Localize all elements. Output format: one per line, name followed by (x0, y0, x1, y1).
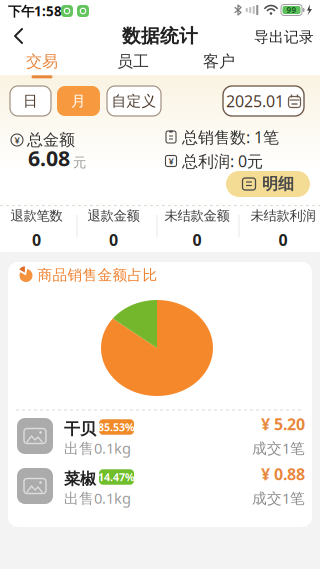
button[interactable]: 导出记录 (254, 20, 314, 54)
staticText: 商品销售金额占比 (37, 266, 157, 284)
button[interactable]: 客户 (203, 52, 235, 78)
staticText: 0 (278, 229, 287, 250)
staticText: 自定义 (111, 92, 156, 110)
staticText: 出售0.1kg (64, 488, 131, 508)
staticText: 未结款利润 (250, 208, 315, 224)
button[interactable]: Back (5, 20, 33, 52)
staticText: 明细 (262, 174, 294, 194)
button[interactable]: 自定义 (107, 86, 161, 116)
staticText: ¥ 0.88 (261, 463, 305, 485)
staticText: 员工 (117, 52, 149, 71)
staticText: 下午1:58 (8, 2, 62, 20)
staticText: ¥ (14, 134, 19, 146)
button[interactable]: 2025.01 (223, 86, 304, 116)
staticText: 6.08 (28, 144, 70, 172)
staticText: 日 (23, 92, 38, 110)
button[interactable]: 菜椒 (8, 468, 312, 512)
staticText: 0 (32, 229, 41, 250)
staticText: 成交1笔 (252, 488, 305, 508)
staticText: 数据统计 (122, 24, 198, 47)
staticText: 总利润: 0元 (182, 150, 263, 172)
staticText: 成交1笔 (252, 438, 305, 458)
staticText: 退款金额 (87, 208, 139, 224)
staticText: 菜椒 (64, 469, 96, 489)
staticText: 0 (192, 229, 201, 250)
button[interactable]: 交易 (26, 52, 58, 78)
button[interactable]: 日 (10, 86, 51, 116)
staticText: 未结款金额 (164, 208, 229, 224)
staticText: ¥ (168, 155, 173, 167)
staticText: 导出记录 (254, 28, 314, 46)
staticText: 出售0.1kg (64, 438, 131, 458)
button[interactable]: 月 (57, 86, 100, 116)
staticText: 总金额 (27, 130, 75, 150)
staticText: 0 (109, 229, 118, 250)
staticText: 客户 (203, 52, 235, 71)
button[interactable]: 明细 (226, 171, 310, 197)
button[interactable]: 员工 (117, 52, 149, 78)
staticText: 交易 (26, 52, 58, 71)
staticText: 总销售数: 1笔 (182, 126, 279, 148)
staticText: 85.53% (98, 420, 135, 434)
staticText: 元 (73, 154, 86, 171)
staticText: 干贝 (64, 419, 96, 439)
button[interactable]: 干贝 (8, 418, 312, 462)
staticText: 99 (286, 5, 296, 15)
staticText: 月 (71, 92, 86, 110)
staticText: ¥ 5.20 (261, 413, 305, 435)
staticText: 退款笔数 (10, 208, 62, 224)
staticText: 14.47% (98, 470, 135, 484)
staticText: 2025.01 (226, 90, 284, 112)
